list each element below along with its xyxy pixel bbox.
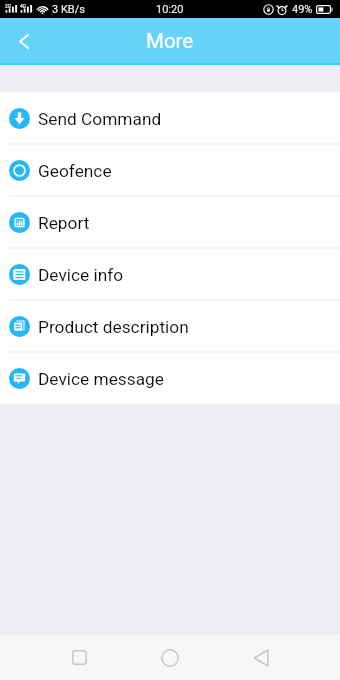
staticText: Report <box>38 213 90 233</box>
staticText: More <box>146 29 194 53</box>
button[interactable]: Device message <box>0 352 340 404</box>
staticText: 2G <box>5 3 12 9</box>
staticText: Geofence <box>38 161 112 181</box>
button[interactable]: Back <box>235 635 287 680</box>
button[interactable]: Recents <box>53 635 105 680</box>
staticText: 3 KB/s <box>52 3 85 16</box>
staticText: 10:20 <box>156 3 184 16</box>
staticText: Product description <box>38 317 189 337</box>
staticText: Device message <box>38 369 165 389</box>
staticText: 49% <box>292 3 313 16</box>
staticText: Device info <box>38 265 124 285</box>
button[interactable]: Report <box>0 196 340 248</box>
staticText: 4G <box>20 3 27 9</box>
button[interactable]: Home <box>144 635 196 680</box>
button[interactable]: Device info <box>0 248 340 300</box>
button[interactable]: Product description <box>0 300 340 352</box>
button[interactable]: Send Command <box>0 92 340 144</box>
button[interactable]: Geofence <box>0 144 340 196</box>
button[interactable]: Back <box>0 18 46 65</box>
staticText: Send Command <box>38 109 162 129</box>
